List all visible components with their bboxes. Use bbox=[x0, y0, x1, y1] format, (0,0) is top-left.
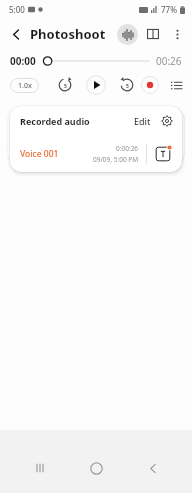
staticText: 5 bbox=[126, 83, 129, 90]
button[interactable]: Settings bbox=[158, 112, 176, 130]
button[interactable]: Back bbox=[4, 22, 28, 46]
staticText: Edit bbox=[134, 115, 151, 127]
staticText: 0:00:26 bbox=[116, 144, 139, 153]
button[interactable]: Forward 5 seconds bbox=[117, 75, 137, 95]
button[interactable]: Play bbox=[86, 75, 106, 95]
staticText: 77% bbox=[161, 4, 177, 15]
staticText: Voice 001 bbox=[20, 148, 59, 160]
staticText: Recorded audio bbox=[20, 115, 90, 127]
staticText: 1.0x bbox=[18, 81, 32, 91]
button[interactable]: Edit bbox=[130, 113, 155, 129]
button[interactable]: Recent apps bbox=[23, 451, 57, 485]
staticText: 00:26 bbox=[156, 54, 182, 68]
staticText: 5 bbox=[64, 83, 67, 90]
staticText: 5:00 bbox=[9, 4, 25, 15]
button[interactable] bbox=[43, 53, 149, 69]
staticText: 09/09, 5:00 PM bbox=[93, 155, 139, 164]
button[interactable]: Home bbox=[79, 451, 113, 485]
button[interactable]: Back bbox=[136, 451, 170, 485]
button[interactable]: More options bbox=[165, 22, 189, 46]
button[interactable]: Record bbox=[140, 75, 160, 95]
button[interactable]: Photoshoot bbox=[8, 108, 184, 164]
staticText: Photoshoot bbox=[30, 25, 106, 43]
staticText: 00:00 bbox=[10, 54, 36, 68]
button[interactable]: Waveform view bbox=[117, 24, 138, 45]
button[interactable]: 1.0x bbox=[10, 78, 39, 93]
button[interactable]: Rewind 5 seconds bbox=[55, 75, 75, 95]
button[interactable]: Playlist bbox=[166, 75, 186, 95]
button[interactable]: Transcript bbox=[152, 143, 174, 165]
button[interactable]: Bookmarks bbox=[141, 22, 165, 46]
